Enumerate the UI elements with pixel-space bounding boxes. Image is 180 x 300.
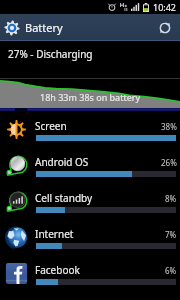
button[interactable]: Battery [4, 14, 180, 41]
staticText: 6% [165, 265, 177, 276]
button[interactable]: Android OS [0, 147, 180, 183]
button[interactable]: Facebook [0, 255, 180, 291]
staticText: 18h 33m 38s on battery [40, 91, 141, 103]
staticText: 38% [161, 121, 177, 132]
staticText: Screen [35, 119, 67, 133]
staticText: Facebook [35, 263, 80, 277]
staticText: Internet [35, 227, 74, 241]
button[interactable]: Internet [0, 219, 180, 255]
staticText: 26% [161, 157, 177, 168]
staticText: Android OS [35, 155, 89, 169]
button[interactable]: Screen [0, 111, 180, 147]
staticText: 7% [165, 229, 177, 240]
staticText: 8% [165, 193, 177, 204]
staticText: 10:42 [153, 1, 177, 13]
button[interactable]: Refresh [150, 14, 180, 41]
staticText: Battery [25, 20, 63, 35]
button[interactable]: Cell standby [0, 183, 180, 219]
staticText: Cell standby [35, 191, 93, 205]
staticText: 27% - Discharging [8, 47, 93, 61]
